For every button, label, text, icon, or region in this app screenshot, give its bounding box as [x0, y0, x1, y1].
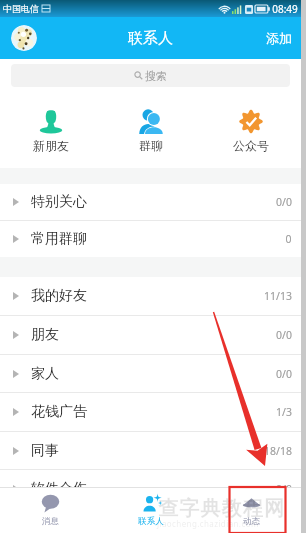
staticText: 0/0 [276, 195, 292, 209]
button[interactable]: 花钱广告 [0, 393, 301, 431]
staticText: 新朋友 [33, 138, 69, 153]
staticText: 消息 [42, 516, 59, 527]
staticText: 0/0 [276, 482, 292, 496]
button[interactable]: 添加 [257, 20, 301, 56]
button[interactable]: 联系人 [101, 488, 201, 533]
staticText: 特别关心 [31, 193, 87, 211]
staticText: 群聊 [139, 138, 163, 153]
button[interactable]: 同事 [0, 432, 301, 469]
staticText: 1/3 [276, 405, 292, 419]
staticText: 公众号 [233, 138, 269, 153]
staticText: 常用群聊 [31, 230, 87, 248]
staticText: 11/13 [264, 289, 292, 303]
button[interactable]: 朋友 [0, 316, 301, 354]
button[interactable]: 软件合作 [0, 470, 301, 508]
staticText: 动态 [243, 516, 260, 527]
button[interactable]: 常用群聊 [0, 221, 301, 257]
button[interactable]: 搜索 [11, 64, 290, 87]
staticText: 联系人 [128, 29, 173, 48]
staticText: 同事 [31, 442, 59, 460]
staticText: 08:49 [272, 2, 298, 16]
button[interactable]: 家人 [0, 355, 301, 392]
staticText: 朋友 [31, 326, 59, 344]
staticText: 我的好友 [31, 287, 87, 305]
button[interactable]: 消息 [0, 488, 101, 533]
button[interactable]: 群聊 [101, 92, 201, 168]
staticText: 18/18 [264, 444, 292, 458]
staticText: 家人 [31, 365, 59, 383]
staticText: 软件合作 [31, 480, 87, 498]
button[interactable]: 新朋友 [0, 92, 101, 168]
button[interactable]: 我的好友 [0, 277, 301, 315]
staticText: 中国电信 [3, 3, 39, 14]
staticText: 0 [285, 232, 292, 246]
button[interactable]: 公众号 [201, 92, 301, 168]
staticText: 0/0 [276, 367, 292, 381]
staticText: 0/0 [276, 328, 292, 342]
staticText: jiaocheng.chazidian.com [157, 518, 259, 529]
staticText: 查字典教程网 [158, 496, 286, 521]
staticText: 添加 [266, 30, 292, 46]
staticText: 联系人 [138, 516, 164, 527]
button[interactable]: Profile avatar [11, 25, 37, 51]
button[interactable]: 特别关心 [0, 184, 301, 220]
staticText: 花钱广告 [31, 403, 87, 421]
staticText: 搜索 [145, 69, 167, 83]
button[interactable]: 动态 [201, 488, 301, 533]
